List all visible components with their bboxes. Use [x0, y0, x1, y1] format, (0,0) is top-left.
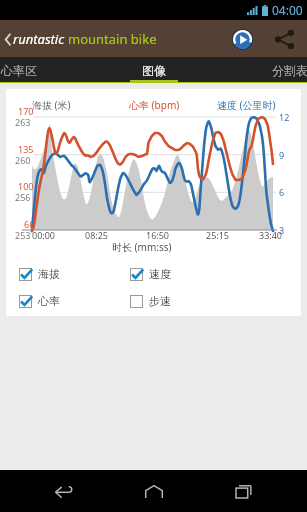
staticText: 260 [15, 154, 31, 166]
staticText: 135 [18, 143, 34, 155]
button[interactable]: Recents [218, 473, 268, 509]
staticText: 9 [279, 149, 285, 161]
staticText: 心率 (bpm) [129, 98, 180, 112]
button[interactable]: Back [4, 30, 157, 48]
button[interactable]: 步速 [130, 294, 171, 308]
staticText: 170 [18, 105, 34, 117]
staticText: 海拔 [38, 267, 60, 281]
staticText: 心率 [38, 294, 60, 308]
staticText: 00:00 [32, 229, 56, 241]
staticText: 6 [279, 186, 285, 198]
button[interactable]: 海拔 [19, 267, 130, 281]
staticText: 25:15 [206, 229, 230, 241]
button[interactable]: 速度 [130, 267, 171, 281]
staticText: 100 [18, 180, 34, 192]
button[interactable]: Back [39, 473, 89, 509]
staticText: 3 [279, 224, 285, 236]
staticText: 步速 [149, 294, 171, 308]
staticText: runtastic [13, 30, 65, 48]
staticText: 速度 [149, 267, 171, 281]
staticText: 33:40 [259, 229, 283, 241]
button[interactable]: Share [267, 22, 301, 56]
button[interactable]: 分割表 [272, 63, 307, 78]
staticText: 04:00 [272, 2, 303, 18]
staticText: 08:25 [85, 229, 109, 241]
staticText: 时长 (mm:ss) [112, 240, 172, 254]
button[interactable]: 图像 [142, 63, 166, 78]
button[interactable]: 心率区 [1, 63, 37, 78]
staticText: 海拔 (米) [32, 98, 71, 112]
staticText: 速度 (公里时) [217, 98, 276, 112]
staticText: 263 [15, 116, 31, 128]
button[interactable]: Runtastic [224, 21, 260, 57]
staticText: 256 [15, 191, 31, 203]
staticText: 16:50 [146, 229, 170, 241]
staticText: mountain bike [68, 30, 157, 48]
button[interactable]: 心率 [19, 294, 130, 308]
other: Back [4, 33, 11, 46]
button[interactable]: Home [129, 473, 179, 509]
staticText: 66 [24, 218, 35, 230]
staticText: 253 [15, 229, 31, 241]
staticText: 12 [279, 111, 290, 123]
